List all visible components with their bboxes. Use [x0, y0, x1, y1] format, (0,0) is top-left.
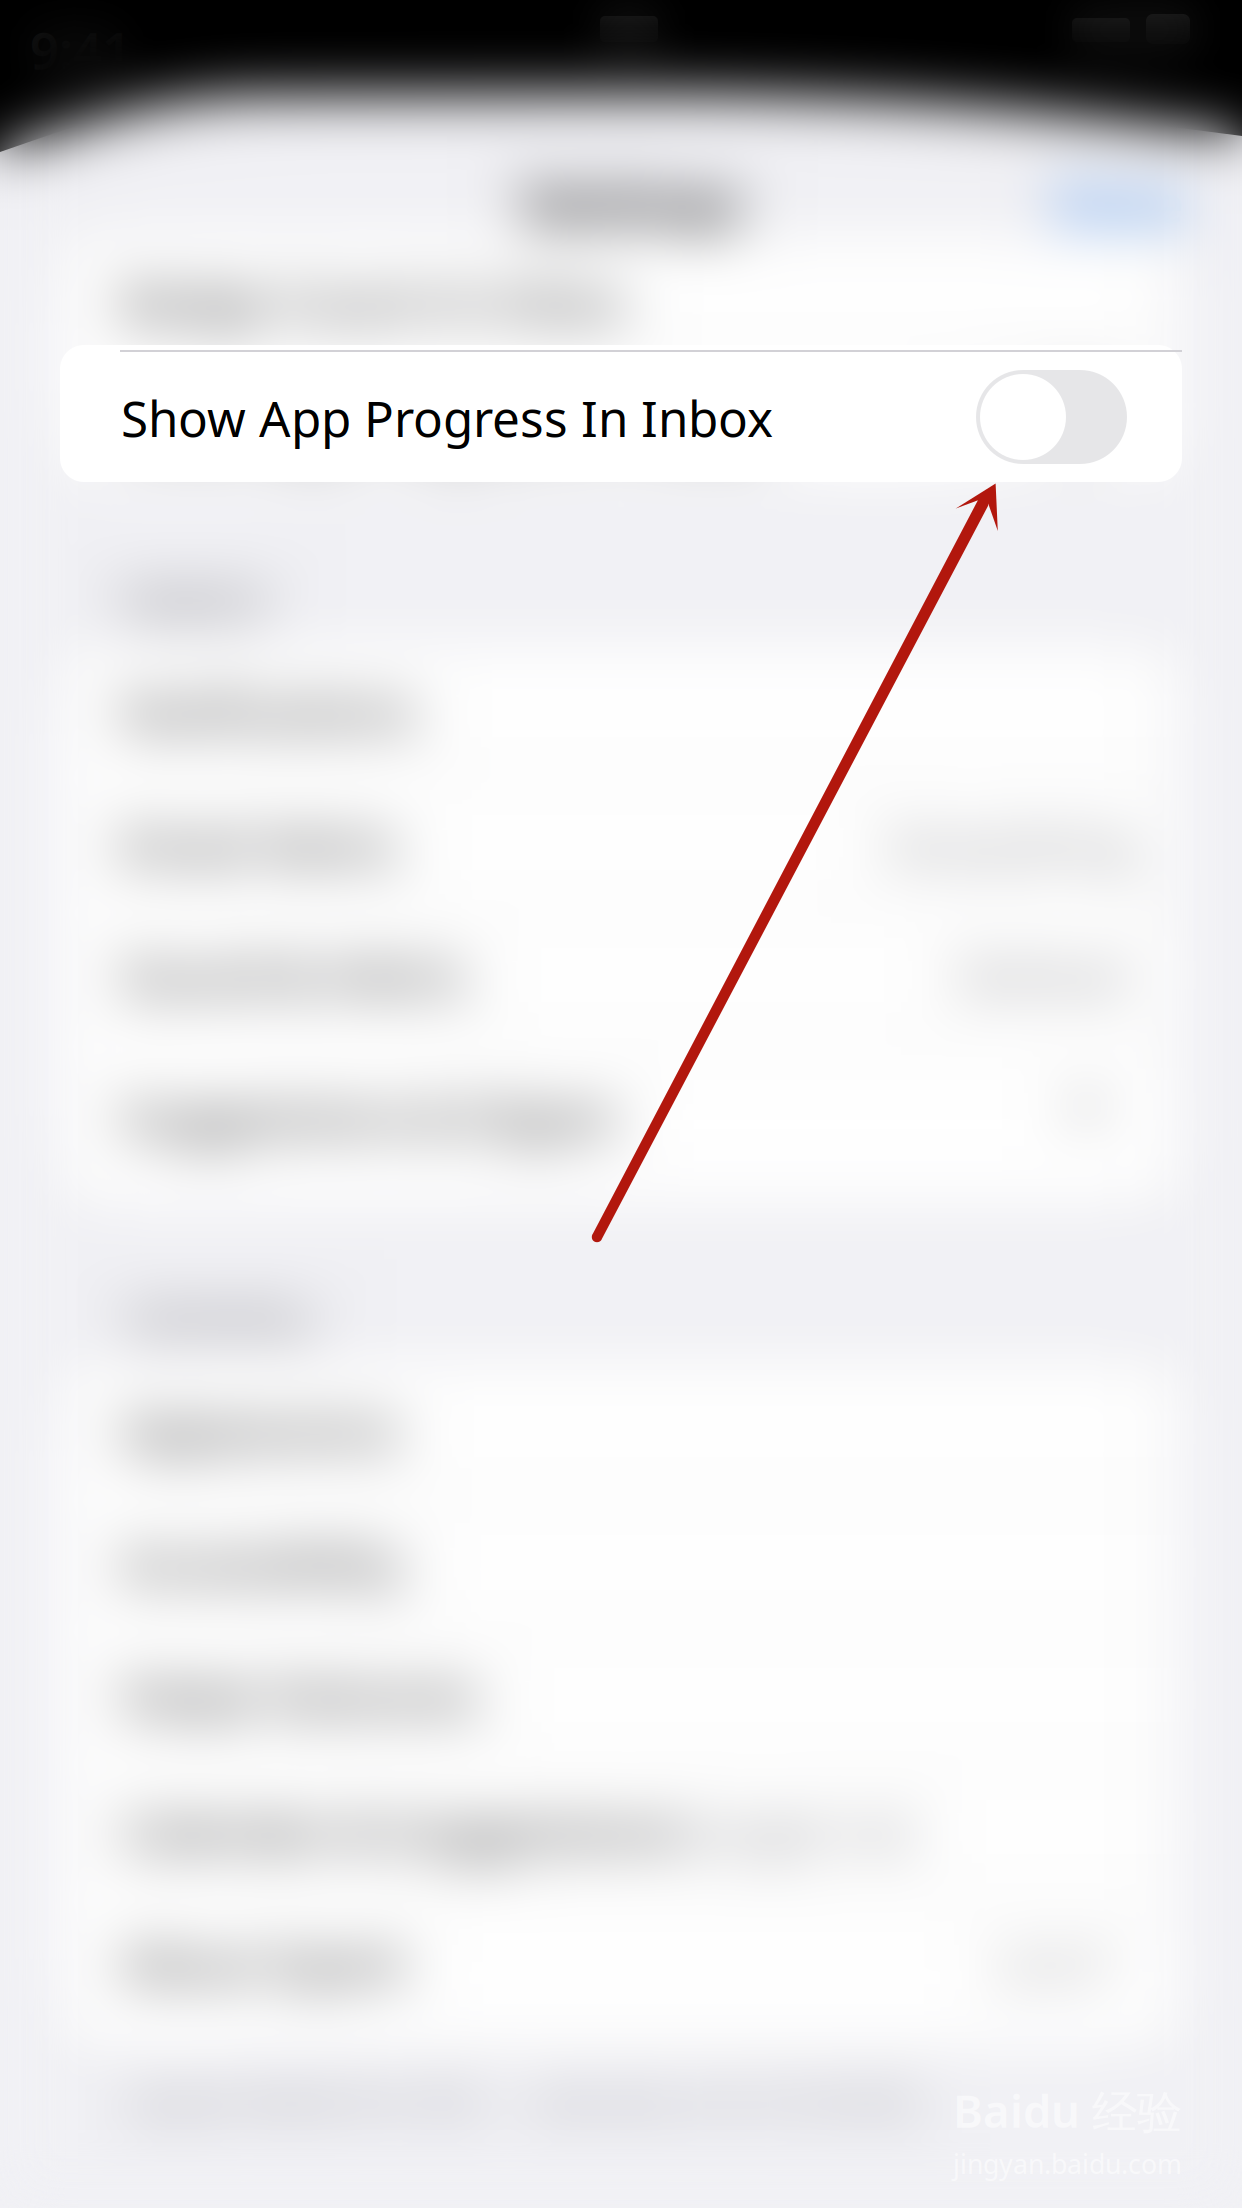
staticText: 9:41	[30, 16, 131, 83]
staticText: About Spark	[121, 1930, 405, 1995]
staticText: Sound & Alerts	[121, 942, 465, 1007]
staticText: Email Alerts	[121, 812, 396, 877]
staticText: Appearance	[121, 1396, 398, 1461]
staticText: Accessibility	[121, 1530, 402, 1595]
staticText: Google Cal	[660, 1798, 912, 1863]
staticText: Suggestions & Digest	[121, 1084, 616, 1149]
staticText: GENERAL	[127, 1292, 319, 1349]
staticText: Show App Progress In Inbox	[121, 398, 773, 463]
staticText: Badge Count In Inbox	[121, 268, 626, 333]
staticText: Settings	[523, 168, 742, 239]
staticText: Done	[1054, 170, 1184, 237]
staticText: Calendar & Suggestions	[121, 1798, 675, 1863]
staticText: Swipe Gestures	[121, 1662, 478, 1727]
staticText: Notifications	[121, 678, 416, 743]
button[interactable]: Show App Progress In Inbox	[60, 345, 1182, 482]
staticText: Show App Progress In Inbox	[121, 385, 773, 450]
staticText: INBOX	[121, 572, 268, 632]
